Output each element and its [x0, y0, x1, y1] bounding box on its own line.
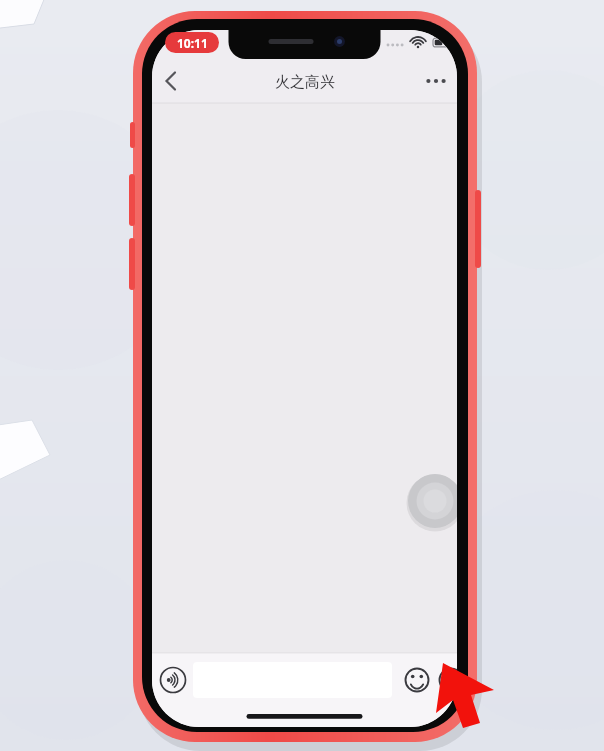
button[interactable]: Back: [156, 60, 200, 104]
staticText: 10:11: [177, 35, 208, 51]
button[interactable]: More actions: [432, 660, 470, 700]
button[interactable]: More options: [414, 60, 458, 104]
staticText: 火之高兴: [275, 73, 335, 92]
button[interactable]: Floating window: [408, 474, 462, 528]
button[interactable]: Voice message: [152, 658, 194, 702]
button[interactable]: Emoji: [398, 660, 436, 700]
button[interactable]: 火之高兴: [234, 60, 376, 104]
